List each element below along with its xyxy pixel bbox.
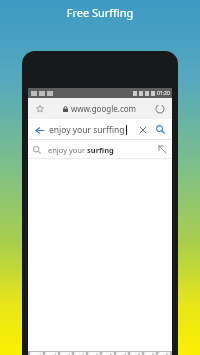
button[interactable]: 2 <box>45 352 58 355</box>
staticText: 5 <box>96 352 99 355</box>
staticText: 2 <box>54 352 57 355</box>
staticText: 8 <box>138 352 141 355</box>
button[interactable]: 0 <box>158 352 170 355</box>
button[interactable]: 5 <box>88 352 100 355</box>
staticText: 7 <box>124 352 127 355</box>
button[interactable]: 9 <box>144 352 156 355</box>
button[interactable]: 8 <box>130 352 142 355</box>
button[interactable]: enjoy your surfing <box>28 140 172 159</box>
staticText: 3 <box>68 352 71 355</box>
button[interactable]: 7 <box>116 352 128 355</box>
staticText: 4 <box>82 352 85 355</box>
staticText: 9 <box>152 352 155 355</box>
button[interactable]: Reload <box>152 101 168 117</box>
button[interactable]: Search <box>153 122 168 137</box>
staticText: enjoy your surffing <box>49 124 125 136</box>
button[interactable]: 4 <box>74 352 86 355</box>
staticText: enjoy your surfing <box>48 145 114 155</box>
button[interactable]: 3 <box>60 352 72 355</box>
staticText: Free Surffing <box>0 5 200 20</box>
staticText: 0 <box>166 352 169 355</box>
staticText: 01:20 <box>157 90 170 97</box>
button[interactable]: 1 <box>30 352 43 355</box>
button[interactable]: 6 <box>102 352 114 355</box>
button[interactable]: Clear <box>136 123 150 137</box>
button[interactable]: Bookmark <box>32 101 48 117</box>
staticText: 1 <box>39 352 42 355</box>
staticText: www.google.com <box>71 103 137 114</box>
staticText: 6 <box>110 352 113 355</box>
button[interactable]: Back <box>31 122 47 138</box>
